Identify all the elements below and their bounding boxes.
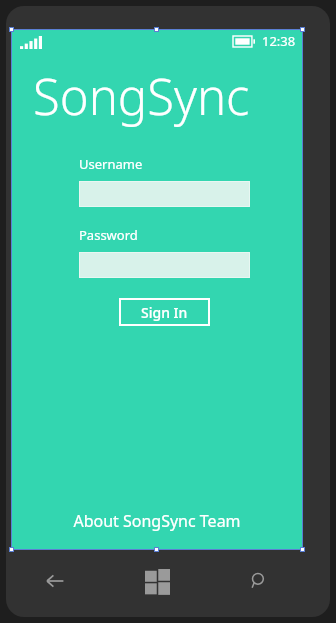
- button[interactable]: [79, 252, 250, 278]
- staticText: Sign In: [141, 303, 188, 322]
- button[interactable]: [79, 181, 250, 207]
- button[interactable]: About SongSync Team: [67, 508, 247, 534]
- staticText: Password: [79, 226, 138, 244]
- button[interactable]: Search: [237, 559, 281, 603]
- staticText: 12:38: [262, 32, 296, 50]
- button[interactable]: Start: [135, 559, 179, 603]
- button[interactable]: Sign In: [119, 298, 210, 326]
- staticText: SongSync: [33, 63, 250, 130]
- staticText: About SongSync Team: [73, 510, 241, 532]
- button[interactable]: Back: [33, 559, 77, 603]
- staticText: Username: [79, 155, 143, 173]
